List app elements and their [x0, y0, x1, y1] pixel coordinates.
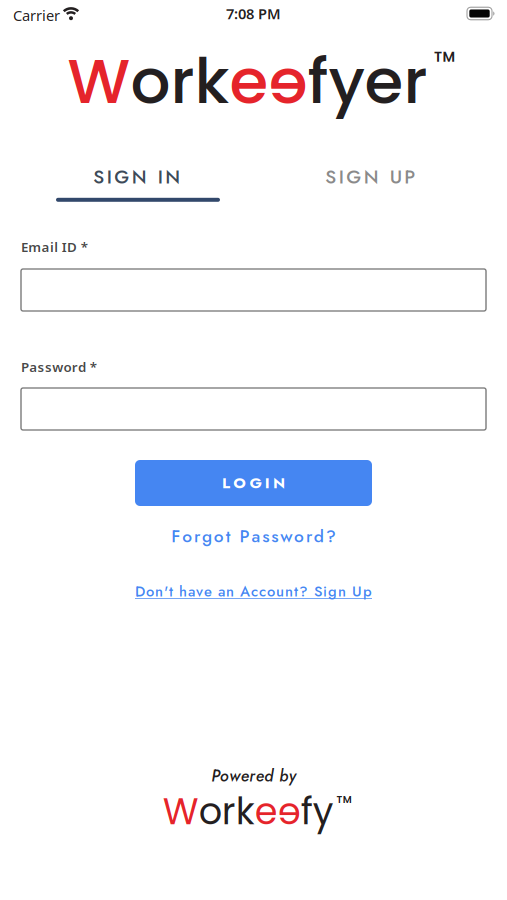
staticText: o [294, 524, 304, 549]
staticText: o [182, 524, 192, 549]
button[interactable]: L [135, 460, 372, 506]
staticText: I [265, 472, 270, 494]
staticText: 7:08 PM [226, 4, 281, 23]
staticText: t [226, 524, 231, 549]
staticText: L [222, 472, 230, 494]
staticText: S [325, 163, 336, 191]
staticText: N [364, 163, 379, 191]
staticText: Password * [21, 358, 97, 376]
staticText: N [165, 163, 180, 191]
staticText: fyer [307, 37, 427, 125]
staticText: W [67, 37, 130, 125]
staticText: F [171, 524, 180, 549]
staticText: TM [336, 792, 352, 806]
staticText: fy [301, 786, 334, 837]
staticText: P [240, 524, 250, 549]
staticText: N [132, 163, 147, 191]
staticText: TM [434, 47, 456, 67]
staticText: U [390, 163, 402, 191]
button[interactable]: Password [21, 388, 486, 430]
staticText: ? [326, 524, 336, 549]
staticText: ork [130, 37, 229, 125]
staticText: I [339, 163, 344, 191]
staticText: e [255, 786, 278, 837]
staticText: s [262, 524, 269, 549]
staticText: a [251, 524, 260, 549]
staticText: e [278, 786, 301, 837]
staticText: e [268, 37, 307, 125]
button[interactable]: F [171, 524, 336, 549]
staticText: P [404, 163, 415, 191]
staticText: Email ID * [21, 238, 88, 256]
staticText: g [202, 524, 212, 549]
staticText: w [280, 524, 292, 549]
staticText: Carrier [13, 5, 60, 25]
staticText: O [233, 472, 246, 494]
staticText: G [114, 163, 129, 191]
button[interactable]: Don't have an Account? Sign Up [135, 581, 372, 602]
staticText: ork [199, 786, 255, 837]
staticText: S [93, 163, 104, 191]
staticText: r [306, 524, 312, 549]
staticText: e [229, 37, 268, 125]
staticText: G [249, 472, 261, 494]
staticText: r [194, 524, 200, 549]
staticText: I [158, 163, 163, 191]
staticText: G [346, 163, 361, 191]
button[interactable]: S [20, 155, 253, 199]
staticText: s [271, 524, 278, 549]
staticText: N [273, 472, 285, 494]
staticText: W [163, 786, 199, 837]
button[interactable]: S [254, 155, 487, 199]
staticText: Powered by [211, 764, 296, 787]
staticText: d [314, 524, 324, 549]
staticText: o [214, 524, 224, 549]
staticText: I [107, 163, 112, 191]
button[interactable]: Email ID [21, 269, 486, 311]
staticText: Don't have an Account? Sign Up [135, 581, 372, 602]
